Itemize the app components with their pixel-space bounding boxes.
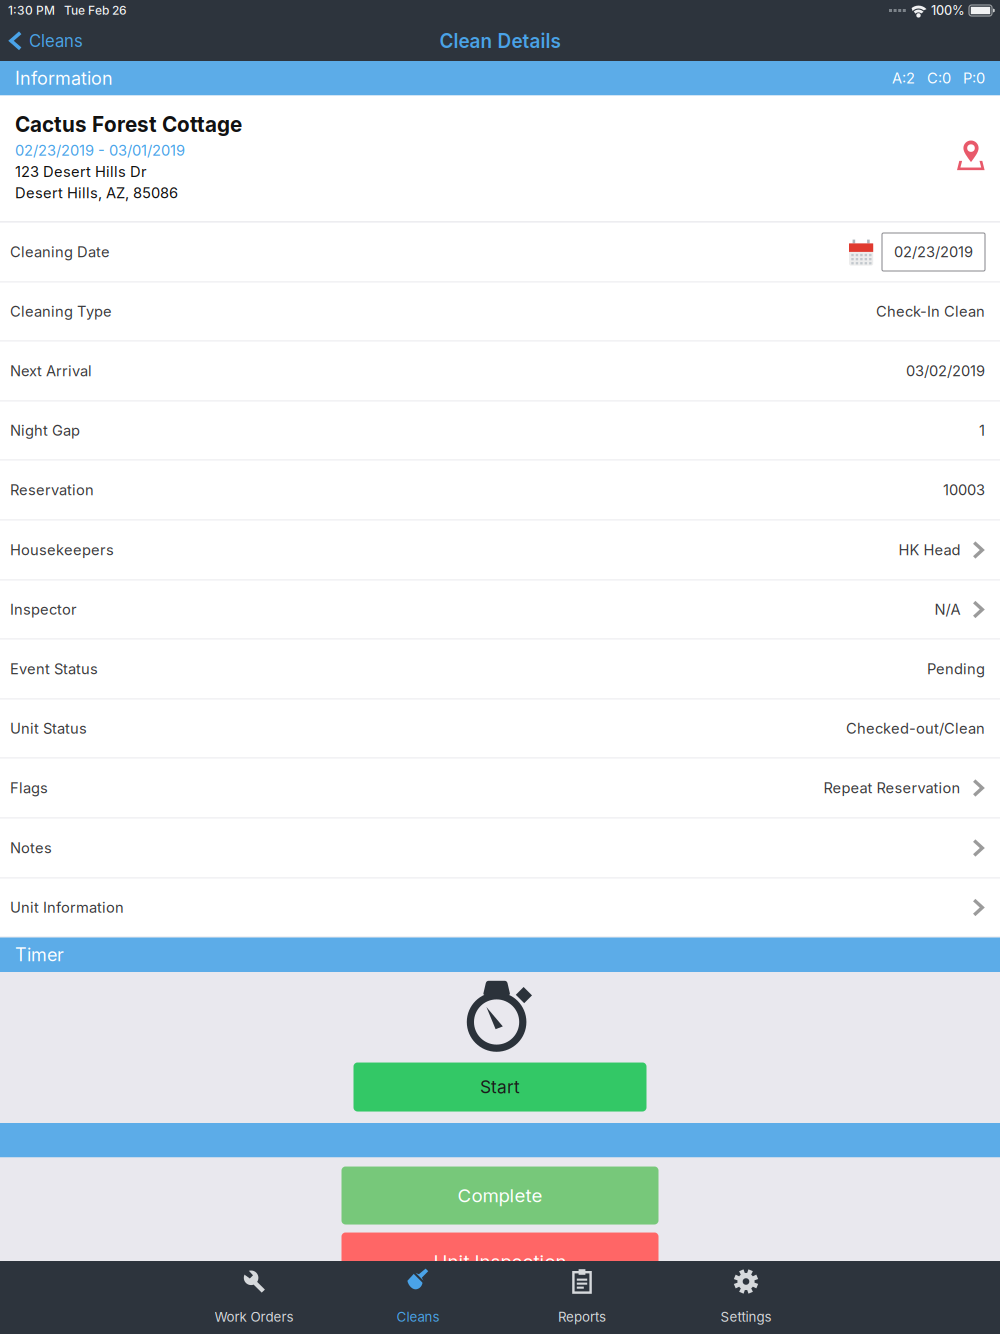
staticText: Cactus Forest Cottage <box>15 112 242 137</box>
staticText: Housekeepers <box>10 541 114 559</box>
button[interactable]: Work Orders <box>172 1261 336 1334</box>
staticText: Timer <box>15 944 64 966</box>
staticText: 1 <box>979 422 985 439</box>
staticText: Work Orders <box>214 1309 293 1325</box>
button[interactable]: Settings <box>664 1261 828 1334</box>
staticText: 03/02/2019 <box>906 362 985 380</box>
button[interactable]: Reservation <box>0 460 1000 520</box>
staticText: HK Head <box>898 541 960 559</box>
button[interactable]: Housekeepers <box>0 520 1000 580</box>
staticText: 123 Desert Hills Dr <box>15 163 147 180</box>
staticText: 02/23/2019 - 03/01/2019 <box>15 141 185 159</box>
button[interactable]: Event Status <box>0 639 1000 699</box>
staticText: Next Arrival <box>10 362 92 380</box>
button[interactable]: Reports <box>500 1261 664 1334</box>
button[interactable]: Notes <box>0 818 1000 878</box>
staticText: 1:30 PM <box>8 3 55 18</box>
button[interactable]: Start <box>353 1062 646 1111</box>
staticText: Reports <box>558 1309 606 1325</box>
staticText: Start <box>480 1076 520 1097</box>
staticText: Unit Inspection <box>433 1250 566 1273</box>
button[interactable]: Cleans <box>0 21 95 61</box>
staticText: Cleaning Date <box>10 243 110 261</box>
button[interactable]: Next Arrival <box>0 341 1000 401</box>
button[interactable]: Flags <box>0 758 1000 818</box>
button[interactable]: Inspector <box>0 580 1000 639</box>
staticText: Reservation <box>10 481 94 499</box>
staticText: Check-In Clean <box>876 303 985 320</box>
staticText: Pending <box>927 660 985 678</box>
staticText: Event Status <box>10 660 98 678</box>
staticText: 02/23/2019 <box>894 243 973 261</box>
staticText: Cleans <box>29 31 83 51</box>
staticText: Unit Information <box>10 899 124 916</box>
button[interactable]: Cleans <box>336 1261 500 1334</box>
staticText: Checked-out/Clean <box>846 720 985 737</box>
button[interactable]: Unit Inspection <box>341 1232 658 1290</box>
staticText: Repeat Reservation <box>823 779 960 797</box>
staticText: Unit Status <box>10 720 87 737</box>
button[interactable]: Unit Status <box>0 699 1000 758</box>
button[interactable]: Show on map <box>957 95 1000 170</box>
staticText: A:2 C:0 P:0 <box>892 69 985 87</box>
staticText: Cleaning Type <box>10 303 112 320</box>
staticText: 100% <box>931 3 965 18</box>
staticText: Settings <box>720 1309 771 1325</box>
staticText: Desert Hills, AZ, 85086 <box>15 184 178 202</box>
staticText: Clean Details <box>439 29 560 52</box>
button[interactable]: Complete <box>341 1166 658 1224</box>
staticText: Tue Feb 26 <box>64 3 127 18</box>
staticText: N/A <box>934 601 960 618</box>
staticText: Inspector <box>10 601 77 618</box>
button[interactable]: Cleaning Type <box>0 282 1000 341</box>
staticText: Night Gap <box>10 422 80 439</box>
staticText: Information <box>15 67 113 89</box>
staticText: Flags <box>10 779 48 797</box>
staticText: Notes <box>10 839 52 857</box>
staticText: Complete <box>457 1184 542 1207</box>
button[interactable]: Cleaning Date <box>0 222 1000 282</box>
staticText: Cleans <box>396 1309 439 1325</box>
staticText: 10003 <box>943 481 985 499</box>
button[interactable]: Unit Information <box>0 878 1000 937</box>
button[interactable]: Night Gap <box>0 401 1000 460</box>
